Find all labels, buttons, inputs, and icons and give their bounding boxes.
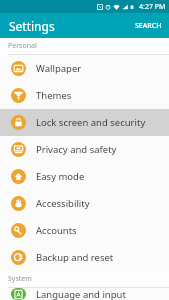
staticText: 4:27 PM — [139, 2, 166, 12]
staticText: Themes — [36, 89, 72, 102]
staticText: Settings — [9, 18, 55, 34]
staticText: Wallpaper — [36, 62, 82, 75]
other: Privacy and safety — [11, 142, 26, 157]
staticText: Accounts — [36, 224, 77, 237]
other: Lock screen and security — [11, 115, 26, 130]
button[interactable]: Wallpaper — [0, 55, 169, 82]
button[interactable]: Easy mode — [0, 163, 169, 190]
other: Backup and reset — [11, 250, 26, 265]
other: Accessibility — [11, 196, 26, 211]
staticText: Personal — [8, 41, 37, 51]
other: Language and input — [11, 288, 26, 300]
button[interactable]: Themes — [0, 82, 169, 109]
staticText: Accessibility — [36, 197, 90, 210]
other: Easy mode — [11, 169, 26, 184]
button[interactable]: Privacy and safety — [0, 136, 169, 163]
other: Accounts — [11, 223, 26, 238]
button[interactable]: Accessibility — [0, 190, 169, 217]
staticText: Privacy and safety — [36, 143, 117, 156]
staticText: SEARCH — [135, 21, 162, 31]
other: Wallpaper — [11, 61, 26, 76]
button[interactable]: Language and input — [0, 288, 169, 300]
staticText: Easy mode — [36, 170, 85, 183]
button[interactable]: SEARCH — [128, 15, 169, 37]
other: Themes — [11, 88, 26, 103]
button[interactable]: Accounts — [0, 217, 169, 244]
button[interactable]: Lock screen and security — [0, 109, 169, 136]
staticText: System — [8, 274, 32, 284]
staticText: Backup and reset — [36, 251, 114, 264]
staticText: Lock screen and security — [36, 116, 146, 129]
staticText: Language and input — [36, 288, 126, 300]
button[interactable]: Backup and reset — [0, 244, 169, 271]
